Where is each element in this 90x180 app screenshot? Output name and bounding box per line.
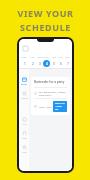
staticText: Sched xyxy=(21,97,28,100)
button[interactable]: Menu xyxy=(22,45,29,52)
button[interactable]: FRI xyxy=(50,53,57,68)
button[interactable]: Like xyxy=(19,114,29,128)
staticText: VIEW YOUR xyxy=(17,7,74,19)
staticText: 4 xyxy=(46,62,48,66)
staticText: SUN xyxy=(65,55,70,58)
button[interactable]: Info xyxy=(19,128,29,142)
staticText: Event xyxy=(21,83,27,86)
staticText: 2 xyxy=(32,62,34,66)
staticText: FRI xyxy=(52,55,56,58)
staticText: SCHEDULE xyxy=(20,21,71,33)
staticText: Bartender for a party xyxy=(34,80,65,84)
staticText: SAT xyxy=(58,55,63,58)
staticText: THU xyxy=(44,55,49,58)
staticText: MON xyxy=(21,55,27,58)
button[interactable]: Sched xyxy=(19,88,29,102)
staticText: User xyxy=(22,151,27,154)
button[interactable]: TUE xyxy=(28,53,36,68)
button[interactable]: 08:00 AM - 10:00 PM xyxy=(53,101,67,112)
button[interactable]: SUN xyxy=(64,53,71,68)
button[interactable]: Bartender for a party xyxy=(31,77,70,115)
button[interactable]: MON xyxy=(20,53,28,68)
staticText: 6 xyxy=(60,62,62,66)
staticText: 5 xyxy=(53,62,55,66)
button[interactable]: User xyxy=(19,142,29,156)
button[interactable]: WED xyxy=(36,53,43,68)
staticText: 1 xyxy=(24,62,26,66)
staticText: TUE xyxy=(30,55,35,58)
staticText: Info xyxy=(22,137,27,140)
button[interactable]: SAT xyxy=(57,53,64,68)
button[interactable]: Event xyxy=(19,74,29,88)
staticText: Like xyxy=(22,123,27,126)
staticText: 7 xyxy=(67,62,69,66)
staticText: WED xyxy=(37,55,43,58)
staticText: Aug 1, 2021 xyxy=(39,105,53,108)
staticText: 561 Baker 2901, Streets Saint Park ... xyxy=(39,90,67,96)
button[interactable]: THU xyxy=(43,53,50,68)
staticText: 08:00 AM - 10:00 PM xyxy=(55,102,65,111)
staticText: 3 xyxy=(39,62,41,66)
